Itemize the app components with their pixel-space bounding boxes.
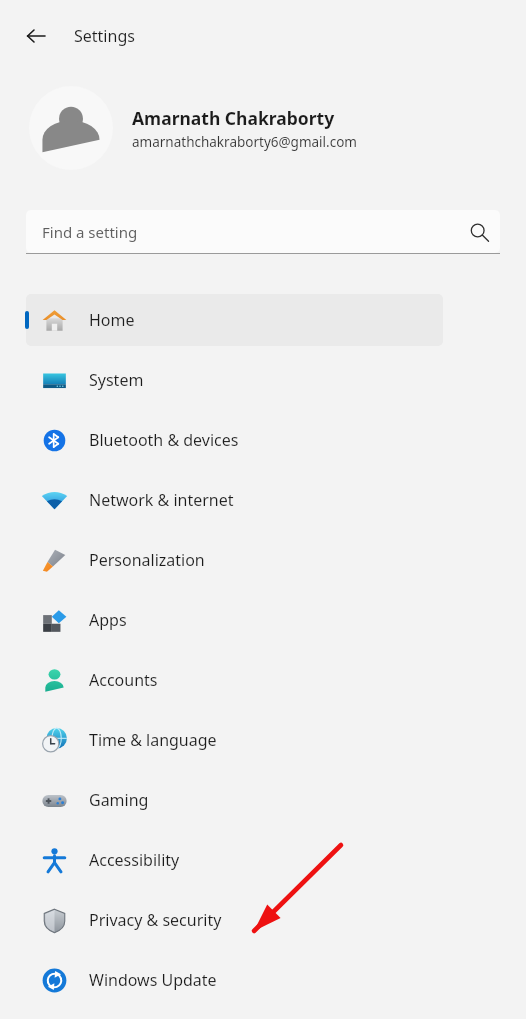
staticText: Network & internet [89, 489, 234, 511]
button[interactable]: Network & internet [0, 470, 526, 530]
staticText: Find a setting [42, 222, 468, 242]
staticText: Bluetooth & devices [89, 429, 239, 451]
button[interactable]: Personalization [0, 530, 526, 590]
staticText: Amarnath Chakraborty [132, 106, 335, 130]
button[interactable]: Privacy & security [0, 890, 526, 950]
button[interactable]: Back [18, 18, 54, 54]
staticText: Time & language [89, 729, 217, 751]
button[interactable]: Home [0, 290, 526, 350]
staticText: Apps [89, 609, 127, 631]
staticText: Home [89, 309, 135, 331]
staticText: Gaming [89, 789, 149, 811]
staticText: System [89, 369, 144, 391]
button[interactable]: Gaming [0, 770, 526, 830]
staticText: Accounts [89, 669, 158, 691]
button[interactable]: Accessibility [0, 830, 526, 890]
button[interactable]: Time & language [0, 710, 526, 770]
button[interactable]: Amarnath Chakraborty [0, 72, 526, 184]
staticText: amarnathchakraborty6@gmail.com [132, 133, 357, 151]
button[interactable]: Find a setting [26, 210, 500, 253]
button[interactable]: Accounts [0, 650, 526, 710]
staticText: Settings [74, 25, 135, 47]
button[interactable]: Apps [0, 590, 526, 650]
staticText: Personalization [89, 549, 205, 571]
staticText: Privacy & security [89, 909, 222, 931]
button[interactable]: Windows Update [0, 950, 526, 1010]
button[interactable]: Bluetooth & devices [0, 410, 526, 470]
staticText: Accessibility [89, 849, 180, 871]
staticText: Windows Update [89, 969, 217, 991]
button[interactable]: System [0, 350, 526, 410]
